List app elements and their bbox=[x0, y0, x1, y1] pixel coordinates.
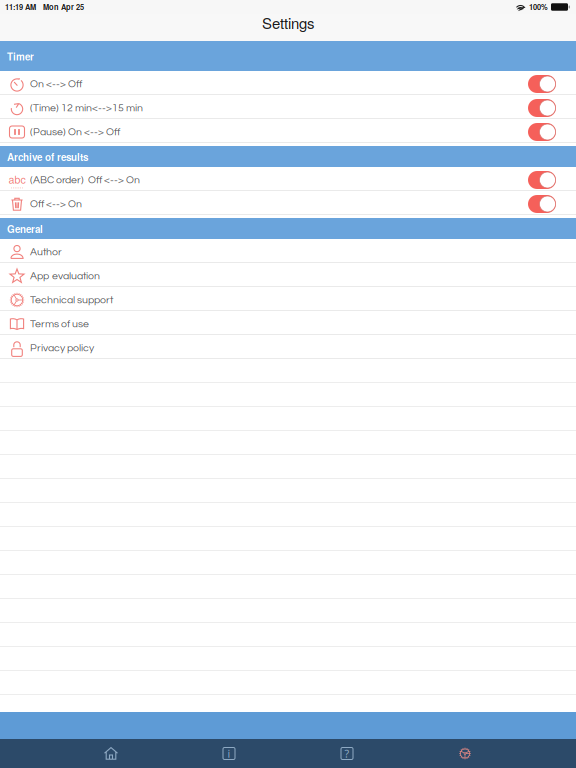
staticText: (ABC order) Off <--> On bbox=[30, 175, 140, 185]
button[interactable]: Home bbox=[52, 739, 170, 768]
staticText: Mon Apr 25 bbox=[43, 2, 84, 12]
staticText: Privacy policy bbox=[30, 343, 94, 353]
staticText: On <--> Off bbox=[30, 79, 82, 89]
button[interactable]: Technical support bbox=[0, 287, 576, 311]
button[interactable]: abc bbox=[0, 167, 576, 191]
staticText: Archive of results bbox=[7, 150, 88, 164]
staticText: 100% bbox=[529, 2, 548, 12]
staticText: Terms of use bbox=[30, 319, 89, 329]
button[interactable]: (Pause) On <--> Off bbox=[0, 119, 576, 143]
button[interactable]: Privacy policy bbox=[0, 335, 576, 359]
staticText: (Time) 12 min<-->15 min bbox=[30, 103, 143, 113]
staticText: Settings bbox=[262, 12, 314, 33]
staticText: (Pause) On <--> Off bbox=[30, 127, 120, 137]
staticText: Technical support bbox=[30, 295, 113, 305]
staticText: abc bbox=[8, 172, 25, 187]
staticText: ? bbox=[344, 746, 349, 761]
button[interactable]: Terms of use bbox=[0, 311, 576, 335]
button[interactable]: Settings bbox=[406, 739, 524, 768]
button[interactable]: (Time) 12 min<-->15 min bbox=[0, 95, 576, 119]
staticText: Off <--> On bbox=[30, 199, 82, 209]
staticText: General bbox=[7, 222, 43, 236]
button[interactable]: On <--> Off bbox=[0, 71, 576, 95]
staticText: App evaluation bbox=[30, 271, 100, 281]
staticText: i bbox=[227, 746, 230, 761]
button[interactable]: Information bbox=[170, 739, 288, 768]
staticText: Author bbox=[30, 247, 62, 257]
button[interactable]: Help bbox=[288, 739, 406, 768]
button[interactable]: Off <--> On bbox=[0, 191, 576, 215]
staticText: 11:19 AM bbox=[5, 2, 36, 12]
button[interactable]: App evaluation bbox=[0, 263, 576, 287]
staticText: Timer bbox=[7, 49, 34, 63]
button[interactable]: Author bbox=[0, 239, 576, 263]
